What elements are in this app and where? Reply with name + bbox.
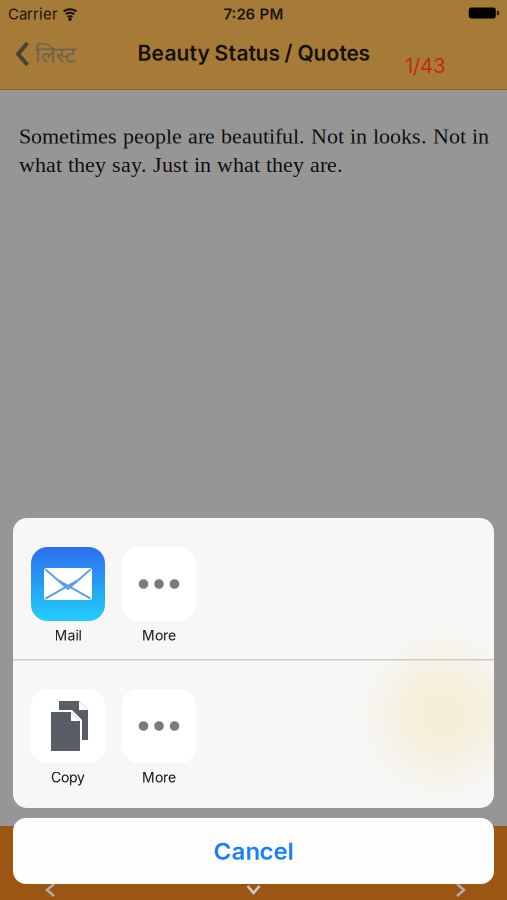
staticText: Cancel [213,836,293,865]
staticText: लिस्ट [35,39,76,69]
staticText: 7:26 PM [223,5,283,23]
staticText: Beauty Status / Quotes [137,40,369,66]
staticText: 1/43 [405,53,446,78]
staticText: Sometimes people are beautiful. Not in l… [19,124,489,177]
staticText: Carrier [8,5,58,23]
button[interactable]: Copy [31,689,105,786]
button[interactable]: More [122,689,196,786]
staticText: More [142,769,176,786]
button[interactable]: Cancel [13,818,494,884]
button[interactable]: More [122,547,196,644]
staticText: More [142,627,176,644]
button[interactable]: Mail [31,547,105,644]
button[interactable]: लिस्ट [16,39,76,69]
staticText: Mail [54,627,81,644]
staticText: Copy [51,769,85,786]
